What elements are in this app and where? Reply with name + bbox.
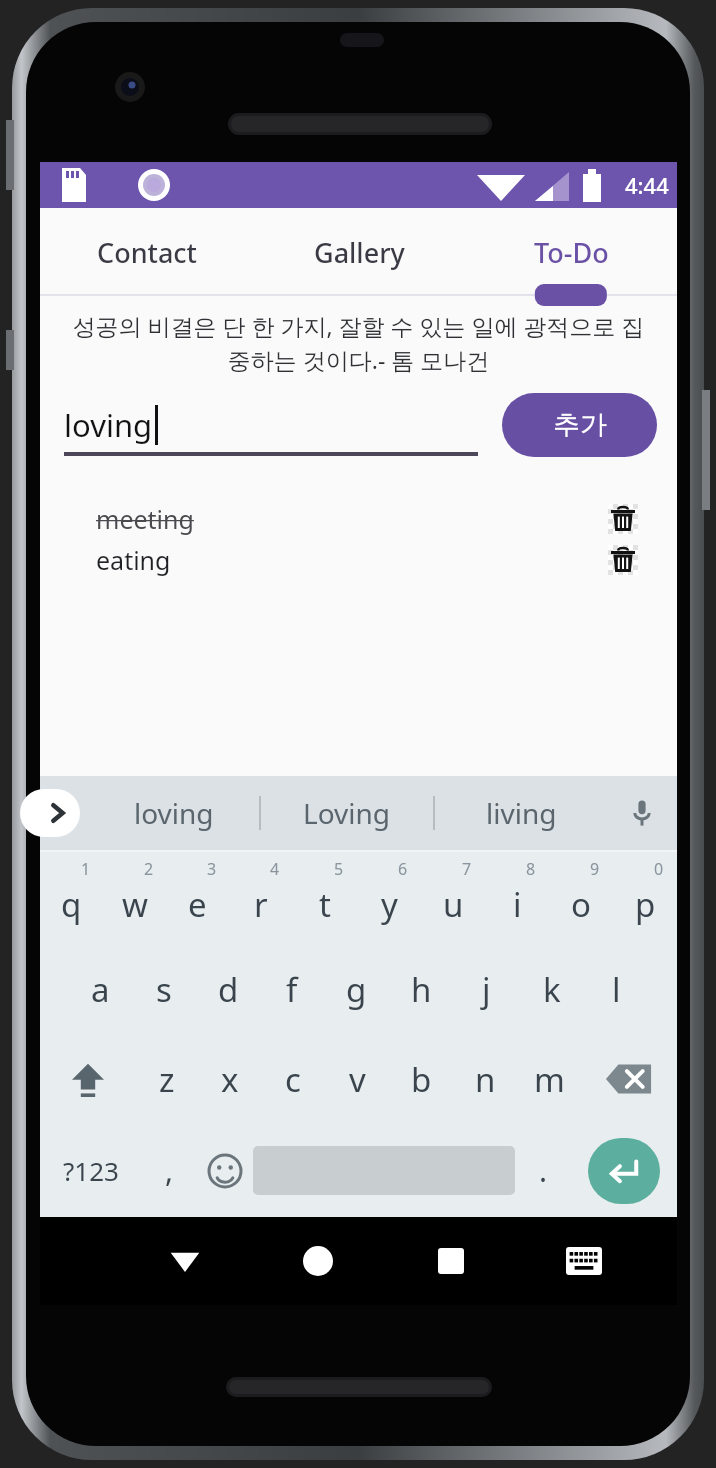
button[interactable]: eating bbox=[96, 539, 641, 580]
staticText: s bbox=[156, 967, 172, 1012]
staticText: a bbox=[91, 967, 110, 1012]
button[interactable]: d bbox=[196, 944, 260, 1034]
button[interactable]: 8 bbox=[485, 852, 549, 944]
staticText: k bbox=[543, 967, 561, 1012]
staticText: z bbox=[159, 1057, 175, 1102]
staticText: i bbox=[513, 882, 522, 927]
staticText: t bbox=[319, 882, 331, 927]
button[interactable]: Delete meeting bbox=[605, 501, 641, 537]
staticText: n bbox=[475, 1057, 496, 1102]
button[interactable]: , bbox=[141, 1124, 197, 1217]
button[interactable]: 5 bbox=[293, 852, 357, 944]
button[interactable]: 9 bbox=[549, 852, 613, 944]
staticText: q bbox=[61, 882, 82, 927]
button[interactable]: 추가 bbox=[502, 393, 657, 457]
staticText: g bbox=[346, 967, 367, 1012]
button[interactable]: ?123 bbox=[40, 1124, 141, 1217]
staticText: 5 bbox=[334, 858, 344, 880]
button[interactable]: Gallery bbox=[253, 208, 465, 296]
staticText: d bbox=[218, 967, 239, 1012]
staticText: y bbox=[381, 882, 398, 927]
button[interactable]: Enter bbox=[588, 1138, 660, 1204]
button[interactable]: c bbox=[261, 1034, 325, 1124]
staticText: w bbox=[122, 882, 148, 927]
staticText: loving bbox=[64, 404, 153, 446]
button[interactable]: Shift bbox=[40, 1034, 135, 1124]
button[interactable]: k bbox=[519, 944, 584, 1034]
staticText: 2 bbox=[144, 858, 154, 880]
button[interactable]: meeting bbox=[96, 498, 641, 539]
button[interactable]: living bbox=[435, 776, 607, 850]
staticText: r bbox=[254, 882, 268, 927]
button[interactable]: 3 bbox=[166, 852, 229, 944]
button[interactable]: Switch keyboard bbox=[517, 1217, 650, 1305]
staticText: 6 bbox=[398, 858, 408, 880]
staticText: v bbox=[349, 1057, 366, 1102]
button[interactable]: b bbox=[389, 1034, 453, 1124]
staticText: e bbox=[188, 882, 207, 927]
staticText: x bbox=[221, 1057, 239, 1102]
button[interactable]: Delete eating bbox=[605, 542, 641, 578]
button[interactable]: l bbox=[584, 944, 649, 1034]
button[interactable]: To-Do bbox=[465, 208, 677, 296]
staticText: 성공의 비결은 단 한 가지, 잘할 수 있는 일에 광적으로 집중하는 것이다… bbox=[62, 310, 655, 376]
staticText: p bbox=[635, 882, 656, 927]
button[interactable]: 6 bbox=[357, 852, 421, 944]
staticText: To-Do bbox=[534, 234, 609, 271]
staticText: 3 bbox=[207, 858, 217, 880]
button[interactable]: Voice input bbox=[619, 790, 665, 836]
button[interactable]: 1 bbox=[40, 852, 103, 944]
button[interactable]: 0 bbox=[613, 852, 677, 944]
staticText: l bbox=[612, 967, 621, 1012]
staticText: Contact bbox=[97, 234, 197, 271]
staticText: living bbox=[486, 794, 557, 832]
button[interactable]: z bbox=[135, 1034, 198, 1124]
staticText: f bbox=[286, 967, 298, 1012]
button[interactable]: x bbox=[198, 1034, 261, 1124]
button[interactable]: Back bbox=[119, 1217, 251, 1305]
button[interactable]: Expand suggestions bbox=[20, 789, 80, 837]
staticText: eating bbox=[96, 543, 605, 577]
staticText: m bbox=[534, 1057, 565, 1102]
staticText: . bbox=[539, 1150, 548, 1191]
staticText: 추가 bbox=[553, 408, 607, 442]
button[interactable]: s bbox=[132, 944, 196, 1034]
button[interactable]: j bbox=[454, 944, 519, 1034]
staticText: j bbox=[482, 967, 491, 1012]
staticText: , bbox=[165, 1150, 174, 1191]
button[interactable]: Backspace bbox=[581, 1034, 677, 1124]
staticText: meeting bbox=[96, 502, 605, 536]
staticText: 4:44 bbox=[625, 170, 669, 200]
staticText: 9 bbox=[590, 858, 600, 880]
button[interactable]: Emoji bbox=[197, 1124, 253, 1217]
button[interactable]: . bbox=[515, 1124, 571, 1217]
button[interactable]: Home bbox=[251, 1217, 384, 1305]
button[interactable]: Loving bbox=[261, 776, 433, 850]
button[interactable]: f bbox=[260, 944, 324, 1034]
staticText: 4 bbox=[270, 858, 280, 880]
staticText: loving bbox=[134, 794, 214, 832]
button[interactable]: Contact bbox=[40, 208, 253, 296]
button[interactable]: loving bbox=[88, 776, 259, 850]
staticText: h bbox=[411, 967, 432, 1012]
staticText: ?123 bbox=[63, 1153, 119, 1188]
staticText: 0 bbox=[654, 858, 664, 880]
staticText: b bbox=[411, 1057, 432, 1102]
button[interactable]: 4 bbox=[229, 852, 293, 944]
button[interactable]: n bbox=[453, 1034, 517, 1124]
button[interactable]: a bbox=[68, 944, 132, 1034]
staticText: 1 bbox=[81, 858, 91, 880]
button[interactable]: h bbox=[389, 944, 454, 1034]
staticText: Gallery bbox=[314, 234, 405, 271]
staticText: Loving bbox=[303, 794, 391, 832]
button[interactable]: v bbox=[325, 1034, 389, 1124]
staticText: 8 bbox=[526, 858, 536, 880]
button[interactable]: 2 bbox=[103, 852, 166, 944]
staticText: c bbox=[285, 1057, 301, 1102]
staticText: o bbox=[571, 882, 591, 927]
button[interactable]: Recents bbox=[384, 1217, 517, 1305]
button[interactable]: 7 bbox=[421, 852, 485, 944]
button[interactable]: m bbox=[517, 1034, 581, 1124]
button[interactable]: g bbox=[324, 944, 389, 1034]
